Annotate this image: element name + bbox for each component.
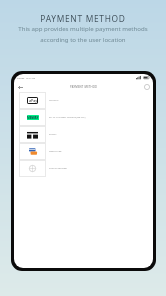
staticText: CREDIT CARD [49,150,62,153]
staticText: PAYMENT METHOD [0,13,166,24]
button[interactable]: Back [15,82,25,92]
staticText: APPLE PAY [49,99,59,102]
staticText: Pay [31,98,37,103]
button[interactable]: Info [142,82,152,92]
staticText: Carrier 9:41 AM [17,77,35,80]
button[interactable]: Pay [14,92,153,109]
staticText: KLARNA [49,133,57,136]
button[interactable]: CREDIT CARD [14,143,153,160]
staticText: PAYMENT METHOD [70,85,98,89]
button[interactable]: MBWAY [14,109,153,126]
staticText: CASH ON DELIVERY [49,167,68,170]
staticText: MBWAY [27,116,39,120]
button[interactable]: KLARNA [14,126,153,143]
staticText: PAY AT A PAYMENT MACHINE (MB WAY) [49,116,86,119]
staticText: This app provides multiple payment metho… [0,24,166,43]
button[interactable]: CASH ON DELIVERY [14,160,153,177]
